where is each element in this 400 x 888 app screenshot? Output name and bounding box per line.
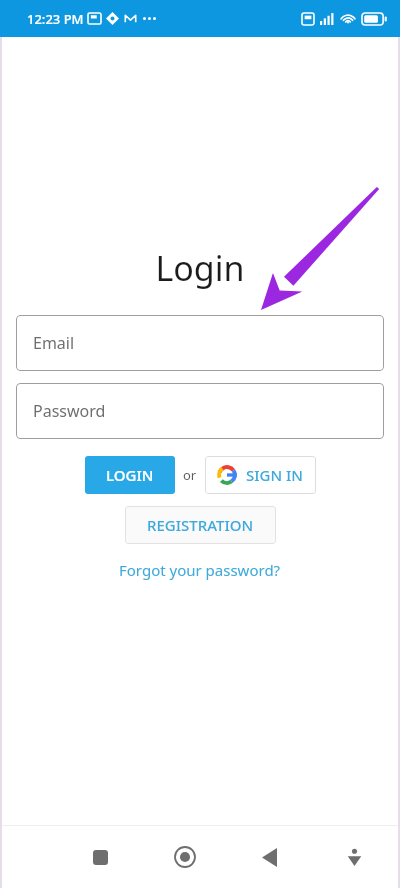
button[interactable]: Back	[247, 835, 291, 879]
button[interactable]: LOGIN	[85, 456, 175, 494]
button[interactable]: Home	[163, 835, 207, 879]
button[interactable]: Email	[16, 315, 384, 371]
staticText: Email	[33, 332, 75, 354]
button[interactable]: Hide keyboard	[332, 835, 376, 879]
button[interactable]: REGISTRATION	[125, 506, 276, 544]
staticText: Forgot your password?	[119, 560, 281, 580]
staticText: Password	[33, 400, 106, 422]
staticText: or	[183, 466, 197, 484]
staticText: 12:23 PM	[27, 10, 84, 28]
button[interactable]: Recent apps	[78, 835, 122, 879]
staticText: Login	[0, 245, 400, 291]
button[interactable]: Password	[16, 383, 384, 439]
staticText: REGISTRATION	[147, 515, 254, 535]
button[interactable]: SIGN IN	[205, 456, 316, 494]
staticText: LOGIN	[106, 465, 154, 485]
button[interactable]: Forgot your password?	[113, 558, 287, 582]
staticText: SIGN IN	[246, 465, 303, 485]
